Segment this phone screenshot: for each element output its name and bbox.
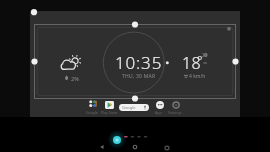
button[interactable]: Back <box>94 139 110 152</box>
button[interactable]: Home <box>127 139 143 152</box>
button[interactable]: Settings <box>172 101 180 109</box>
button[interactable]: Google <box>119 104 149 111</box>
staticText: 4 km/h <box>189 73 206 80</box>
button[interactable]: Assistant orb <box>113 136 121 144</box>
staticText: 18 <box>182 52 202 74</box>
staticText: App <box>155 110 162 115</box>
staticText: Play Store <box>101 110 118 115</box>
staticText: 2% <box>71 75 79 83</box>
staticText: THU, 30 MAR <box>122 73 156 80</box>
staticText: Google <box>86 110 98 115</box>
staticText: Settings <box>168 110 182 115</box>
button[interactable]: Google folder <box>89 100 96 107</box>
staticText: Google <box>122 105 136 110</box>
button[interactable]: Play Store <box>105 101 114 109</box>
button[interactable]: Recents <box>159 140 175 152</box>
staticText: 10:35 <box>115 51 163 74</box>
button[interactable] <box>30 11 240 117</box>
staticText: ° <box>197 51 203 69</box>
button[interactable]: Assistant <box>156 101 164 109</box>
staticText: 28 <box>202 52 208 58</box>
